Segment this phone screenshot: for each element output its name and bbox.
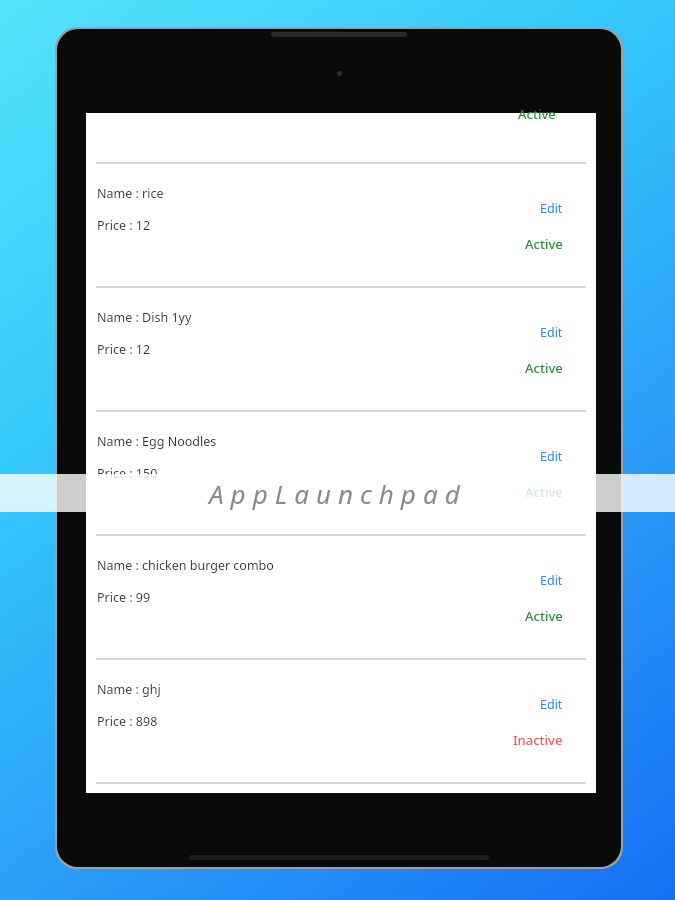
button[interactable]: Edit — [537, 198, 566, 219]
button[interactable]: Name : Dish 1yy — [86, 288, 596, 410]
button[interactable]: Active — [522, 605, 566, 627]
staticText: Active — [518, 105, 556, 123]
button[interactable]: Inactive — [510, 729, 566, 751]
staticText: Edit — [540, 200, 563, 217]
staticText: Active — [525, 483, 563, 501]
button[interactable]: Name : ghj — [86, 660, 596, 782]
button[interactable]: Edit — [537, 694, 566, 715]
button[interactable]: Edit — [537, 570, 566, 591]
button[interactable]: Active — [516, 104, 558, 124]
button[interactable]: Edit — [537, 446, 566, 467]
button[interactable]: Name : Egg Noodles — [86, 412, 596, 534]
staticText: Edit — [540, 324, 563, 341]
staticText: Name : ghj — [97, 681, 161, 698]
staticText: Name : rice — [97, 185, 164, 202]
button[interactable]: Active — [522, 357, 566, 379]
staticText: Name : Dish 1yy — [97, 309, 192, 326]
staticText: Price : 12 — [97, 217, 151, 234]
button[interactable]: Active — [522, 233, 566, 255]
staticText: Edit — [540, 696, 563, 713]
staticText: Name : Egg Noodles — [97, 433, 217, 450]
staticText: Inactive — [513, 731, 563, 749]
button[interactable]: Name : chicken burger combo — [86, 536, 596, 658]
staticText: AppLaunchpad — [209, 476, 467, 511]
staticText: Price : 12 — [97, 341, 151, 358]
staticText: Price : 150 — [97, 465, 158, 482]
staticText: Edit — [540, 448, 563, 465]
staticText: Active — [525, 607, 563, 625]
staticText: Name : chicken burger combo — [97, 557, 274, 574]
button[interactable]: Active — [522, 481, 566, 503]
button[interactable]: Name : rice — [86, 164, 596, 286]
button[interactable]: Edit — [537, 322, 566, 343]
staticText: Price : 99 — [97, 589, 151, 606]
staticText: Active — [525, 235, 563, 253]
staticText: Price : 898 — [97, 713, 158, 730]
staticText: Edit — [540, 572, 563, 589]
staticText: Active — [525, 359, 563, 377]
